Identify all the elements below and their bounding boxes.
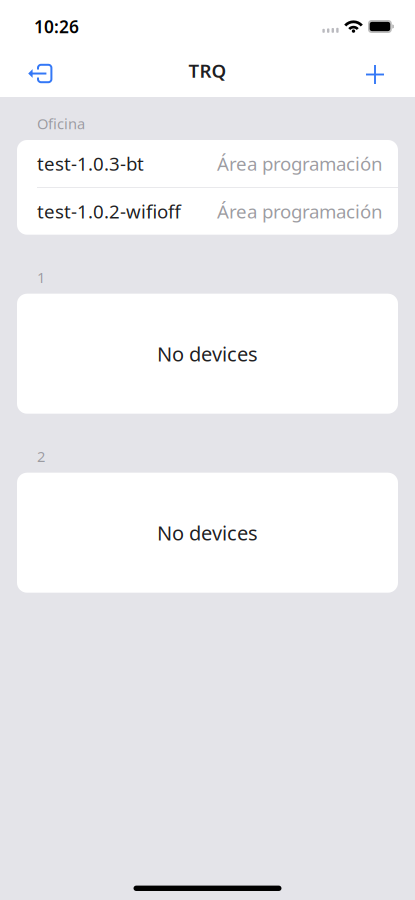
button[interactable]: Add [350,44,415,97]
button[interactable]: test-1.0.3-bt [17,140,398,187]
staticText: No devices [157,519,258,546]
button[interactable]: Sign out [0,44,69,97]
button[interactable]: test-1.0.2-wifioff [17,188,398,235]
staticText: Área programación [217,199,383,224]
staticText: 2 [37,446,45,466]
staticText: TRQ [188,58,226,83]
staticText: test-1.0.2-wifioff [37,199,181,224]
staticText: Oficina [37,114,85,133]
staticText: No devices [157,340,258,367]
staticText: test-1.0.3-bt [37,151,144,176]
staticText: Área programación [217,151,383,176]
staticText: 1 [37,267,45,287]
staticText: 10:26 [34,15,79,38]
